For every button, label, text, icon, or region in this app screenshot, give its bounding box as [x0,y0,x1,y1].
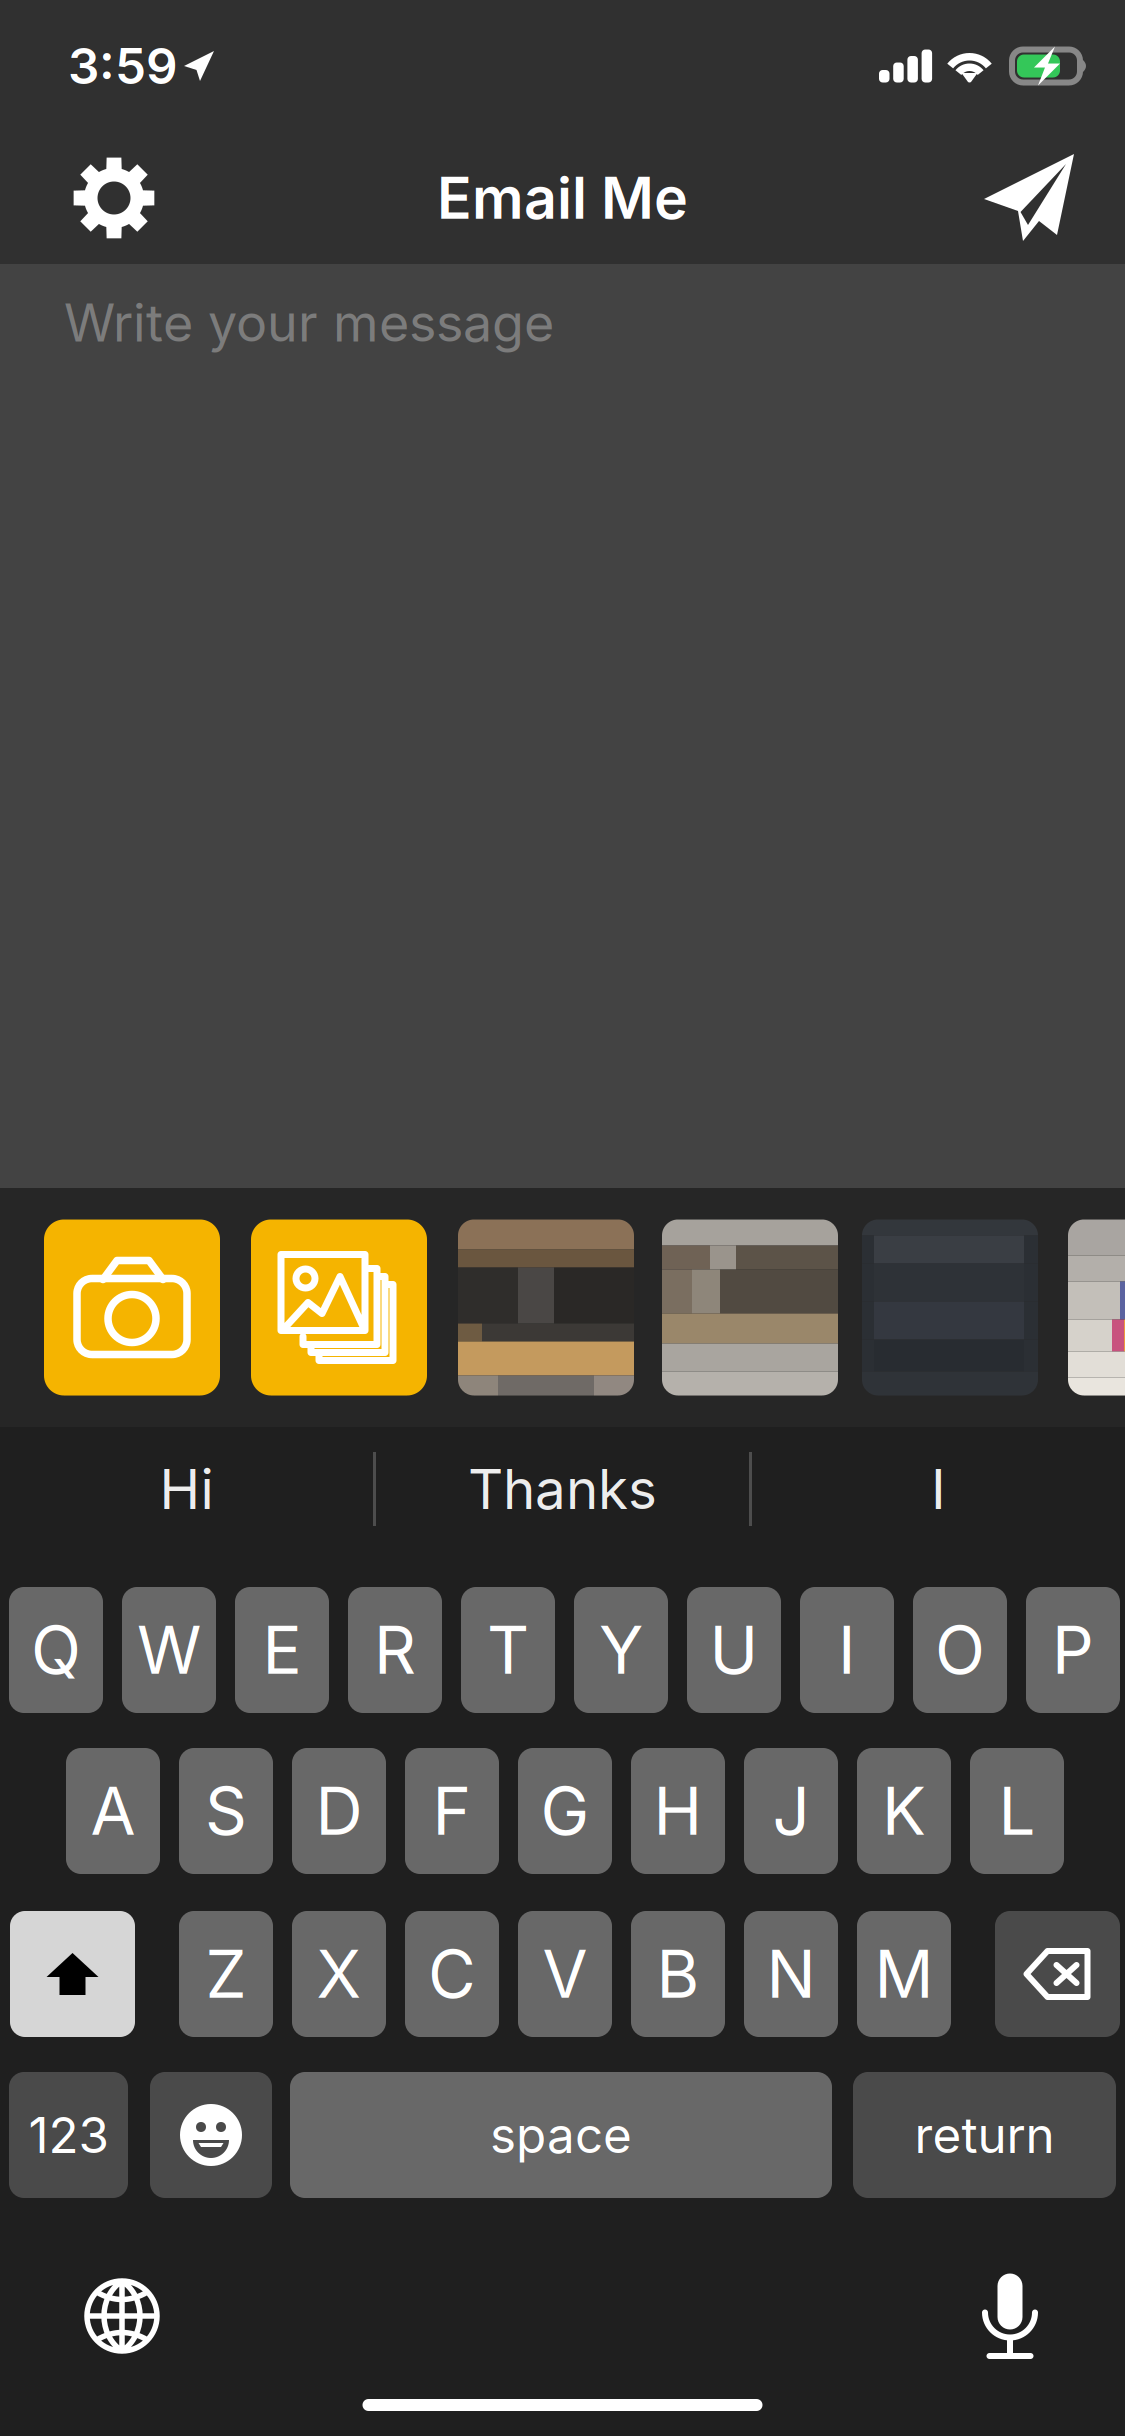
button[interactable]: C [405,1911,499,2037]
staticText: Email Me [437,163,688,233]
staticText: X [316,1934,361,2013]
button[interactable]: Y [574,1587,668,1713]
button[interactable]: return [853,2072,1116,2198]
staticText: A [90,1771,135,1850]
button[interactable]: U [687,1587,781,1713]
button[interactable]: T [461,1587,555,1713]
button[interactable]: space [290,2072,832,2198]
button[interactable]: Dictate [948,2268,1072,2364]
button[interactable]: Z [179,1911,273,2037]
staticText: E [262,1610,301,1689]
button[interactable]: M [857,1911,951,2037]
button[interactable]: H [631,1748,725,1874]
staticText: T [487,1610,529,1689]
button[interactable]: X [292,1911,386,2037]
button[interactable]: 123 [9,2072,128,2198]
button[interactable]: Photo library [251,1219,427,1395]
button[interactable]: Photo 4 [1068,1219,1125,1395]
staticText: B [656,1934,699,2013]
button[interactable]: O [913,1587,1007,1713]
staticText: 3:59 [68,36,178,96]
button[interactable]: Delete [995,1911,1120,2037]
staticText: H [653,1771,702,1850]
button[interactable]: I [800,1587,894,1713]
staticText: Q [31,1610,81,1689]
button[interactable]: Photo 1 [458,1219,634,1395]
button[interactable]: Photo 2 [662,1219,838,1395]
button[interactable]: L [970,1748,1064,1874]
staticText: L [998,1771,1035,1850]
staticText: I [931,1456,946,1522]
staticText: K [882,1771,926,1850]
button[interactable]: Photo 3 [862,1219,1038,1395]
button[interactable]: V [518,1911,612,2037]
staticText: U [709,1610,758,1689]
staticText: C [428,1934,476,2013]
button[interactable]: Next keyboard [60,2268,184,2364]
staticText: O [935,1610,985,1689]
button[interactable]: K [857,1748,951,1874]
staticText: Y [599,1610,643,1689]
staticText: D [315,1771,362,1850]
button[interactable]: F [405,1748,499,1874]
button[interactable]: Send [957,132,1103,264]
button[interactable]: Hi [0,1427,373,1551]
staticText: M [874,1934,933,2013]
button[interactable]: N [744,1911,838,2037]
staticText: V [542,1934,587,2013]
button[interactable]: J [744,1748,838,1874]
button[interactable]: B [631,1911,725,2037]
button[interactable]: Emoji [150,2072,272,2198]
button[interactable]: S [179,1748,273,1874]
staticText: G [540,1771,589,1850]
staticText: N [766,1934,815,2013]
button[interactable]: Q [9,1587,103,1713]
staticText: return [914,2105,1054,2165]
staticText: P [1052,1610,1094,1689]
staticText: S [205,1771,247,1850]
button[interactable]: W [122,1587,216,1713]
staticText: J [772,1771,809,1850]
button[interactable]: R [348,1587,442,1713]
staticText: W [137,1610,201,1689]
button[interactable]: G [518,1748,612,1874]
staticText: F [432,1771,471,1850]
button[interactable]: Settings [41,132,187,264]
staticText: I [838,1610,856,1689]
button[interactable]: Thanks [376,1427,749,1551]
button[interactable]: E [235,1587,329,1713]
staticText: 123 [28,2105,108,2165]
button[interactable]: Take photo [44,1219,220,1395]
button[interactable]: A [66,1748,160,1874]
button[interactable]: P [1026,1587,1120,1713]
staticText: Z [205,1934,246,2013]
staticText: Write your message [64,291,554,354]
button[interactable]: D [292,1748,386,1874]
staticText: space [490,2105,632,2165]
staticText: R [374,1610,416,1689]
staticText: Hi [159,1456,213,1522]
staticText: Thanks [468,1456,657,1522]
button[interactable]: I [752,1427,1125,1551]
button[interactable]: Shift [10,1911,135,2037]
